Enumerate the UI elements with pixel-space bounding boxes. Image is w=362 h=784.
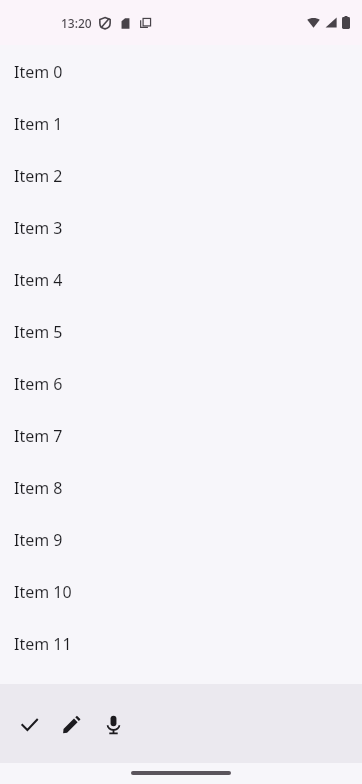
- button[interactable]: Item 9: [0, 514, 362, 566]
- button[interactable]: Item 13: [0, 722, 362, 774]
- staticText: Item 4: [14, 269, 63, 291]
- staticText: Item 6: [14, 373, 63, 395]
- button[interactable]: Item 6: [0, 358, 362, 410]
- staticText: Item 0: [14, 61, 63, 83]
- button[interactable]: Done: [8, 703, 50, 745]
- button[interactable]: Item 7: [0, 410, 362, 462]
- staticText: Item 11: [14, 633, 72, 655]
- button[interactable]: Item 12: [0, 670, 362, 722]
- button[interactable]: Item 0: [0, 46, 362, 98]
- staticText: Item 3: [14, 217, 63, 239]
- button[interactable]: Voice input: [92, 703, 134, 745]
- staticText: Item 1: [14, 113, 63, 135]
- button[interactable]: Item 10: [0, 566, 362, 618]
- button[interactable]: Item 4: [0, 254, 362, 306]
- staticText: Item 8: [14, 477, 63, 499]
- staticText: Item 7: [14, 425, 63, 447]
- button[interactable]: Edit: [50, 703, 92, 745]
- button[interactable]: Item 11: [0, 618, 362, 670]
- staticText: Item 5: [14, 321, 63, 343]
- staticText: Item 2: [14, 165, 63, 187]
- staticText: Item 10: [14, 581, 72, 603]
- button[interactable]: Item 1: [0, 98, 362, 150]
- button[interactable]: Item 3: [0, 202, 362, 254]
- staticText: Item 9: [14, 529, 63, 551]
- button[interactable]: Item 8: [0, 462, 362, 514]
- staticText: 13:20: [61, 15, 92, 31]
- button[interactable]: Item 5: [0, 306, 362, 358]
- button[interactable]: Item 2: [0, 150, 362, 202]
